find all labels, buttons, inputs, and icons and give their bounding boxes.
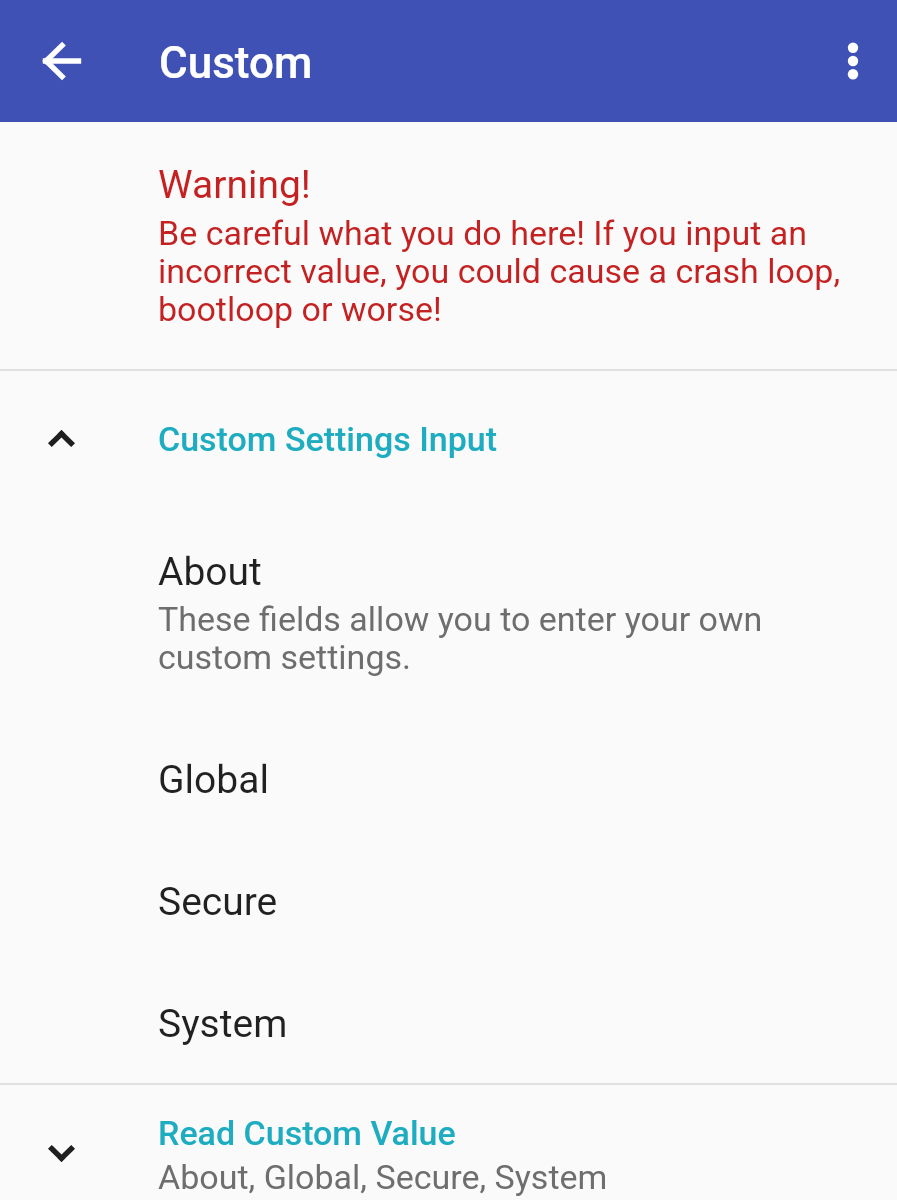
button[interactable]: Read Custom Value: [0, 1085, 897, 1200]
staticText: Read Custom Value: [158, 1113, 456, 1153]
button[interactable]: Navigate up: [17, 16, 107, 106]
button[interactable]: Secure: [0, 841, 897, 963]
staticText: Warning!: [158, 162, 311, 208]
button[interactable]: About: [0, 530, 897, 700]
staticText: Global: [158, 757, 269, 803]
staticText: System: [158, 1001, 288, 1047]
staticText: About: [158, 549, 262, 595]
staticText: About, Global, Secure, System: [158, 1157, 608, 1197]
staticText: Be careful what you do here! If you inpu…: [158, 213, 858, 330]
button[interactable]: More options: [813, 21, 893, 101]
button[interactable]: System: [0, 963, 897, 1085]
button[interactable]: Global: [0, 719, 897, 841]
staticText: Custom: [159, 37, 313, 89]
staticText: Custom Settings Input: [158, 419, 498, 459]
button[interactable]: Custom Settings Input: [0, 392, 897, 486]
staticText: Secure: [158, 879, 278, 925]
staticText: These fields allow you to enter your own…: [158, 599, 858, 678]
